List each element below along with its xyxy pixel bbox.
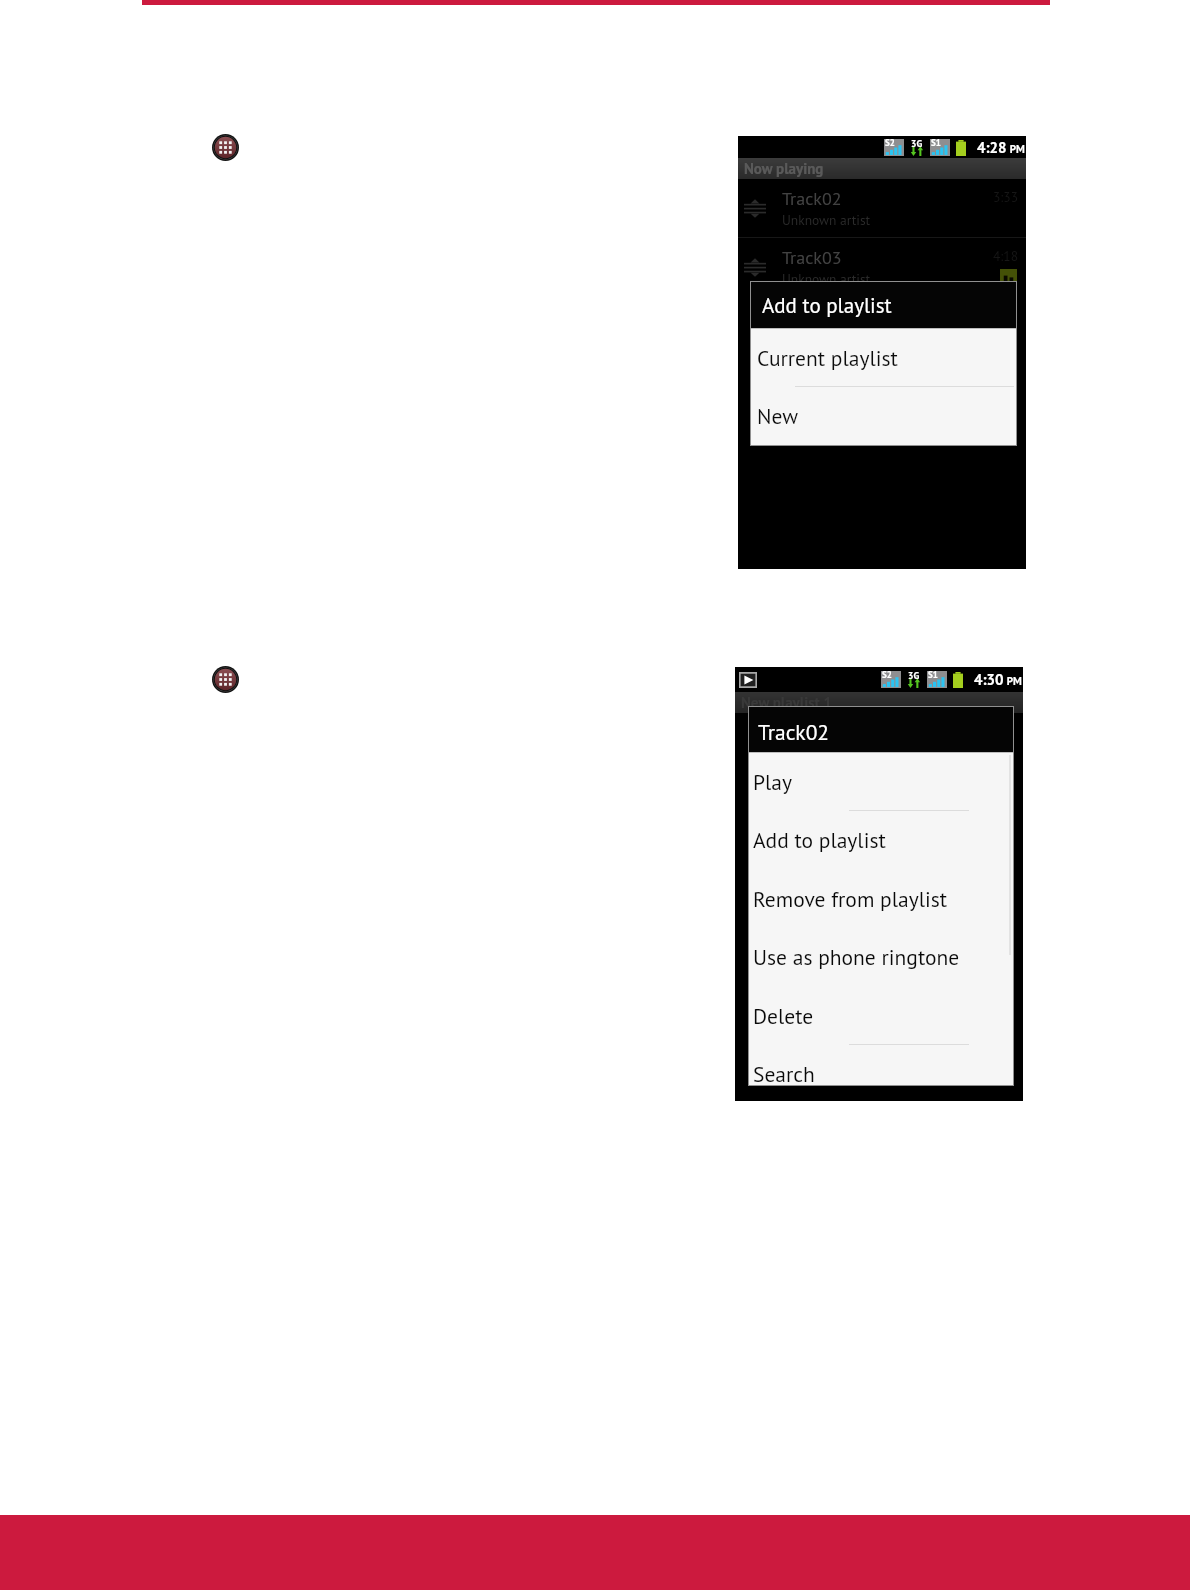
staticText: PM bbox=[1004, 674, 1022, 688]
staticText: Unknown artist bbox=[782, 270, 871, 287]
button[interactable]: Apps bbox=[212, 666, 239, 693]
staticText: Current playlist bbox=[757, 344, 898, 372]
staticText: Play bbox=[753, 768, 792, 796]
button[interactable]: Search bbox=[749, 1045, 1013, 1085]
staticText: Search bbox=[753, 1060, 815, 1085]
staticText: PM bbox=[1007, 142, 1025, 156]
button[interactable]: New bbox=[751, 387, 1016, 445]
button[interactable]: Track03 bbox=[738, 238, 1026, 296]
staticText: Track02 bbox=[782, 187, 842, 210]
button[interactable]: Apps bbox=[212, 134, 239, 161]
staticText: Remove from playlist bbox=[753, 885, 948, 913]
staticText: New bbox=[757, 402, 798, 430]
staticText: 4:28 bbox=[977, 138, 1007, 157]
button[interactable]: Use as phone ringtone bbox=[749, 928, 1013, 986]
staticText: S1 bbox=[931, 137, 941, 149]
staticText: 4:18 bbox=[993, 247, 1019, 264]
button[interactable]: Track02 bbox=[738, 179, 1026, 237]
button[interactable]: Current playlist bbox=[751, 329, 1016, 386]
staticText: 4:30 bbox=[974, 670, 1004, 689]
button[interactable]: Now playing bbox=[738, 158, 1026, 179]
staticText: Track02 bbox=[758, 718, 830, 746]
staticText: S2 bbox=[885, 137, 895, 149]
button[interactable]: Track02 bbox=[749, 707, 1013, 752]
staticText: 3G bbox=[908, 669, 920, 681]
staticText: Unknown artist bbox=[782, 211, 871, 228]
button[interactable]: New playlist 1 bbox=[735, 692, 1023, 713]
staticText: S1 bbox=[928, 669, 938, 681]
button[interactable]: Play bbox=[749, 753, 1013, 811]
button[interactable]: Delete bbox=[749, 987, 1013, 1045]
button[interactable]: Add to playlist bbox=[749, 811, 1013, 869]
staticText: Add to playlist bbox=[762, 292, 892, 319]
button[interactable]: Remove from playlist bbox=[749, 870, 1013, 928]
staticText: Delete bbox=[753, 1002, 814, 1030]
staticText: Now playing bbox=[744, 159, 824, 178]
staticText: Track03 bbox=[782, 246, 842, 269]
button[interactable]: Add to playlist bbox=[751, 282, 1016, 328]
staticText: S2 bbox=[882, 669, 892, 681]
staticText: New playlist 1 bbox=[741, 693, 833, 712]
staticText: Add to playlist bbox=[753, 826, 886, 854]
staticText: Use as phone ringtone bbox=[753, 943, 960, 971]
button[interactable]: Now playing bbox=[739, 672, 757, 688]
staticText: 3:33 bbox=[993, 188, 1019, 205]
staticText: 3G bbox=[911, 137, 923, 149]
